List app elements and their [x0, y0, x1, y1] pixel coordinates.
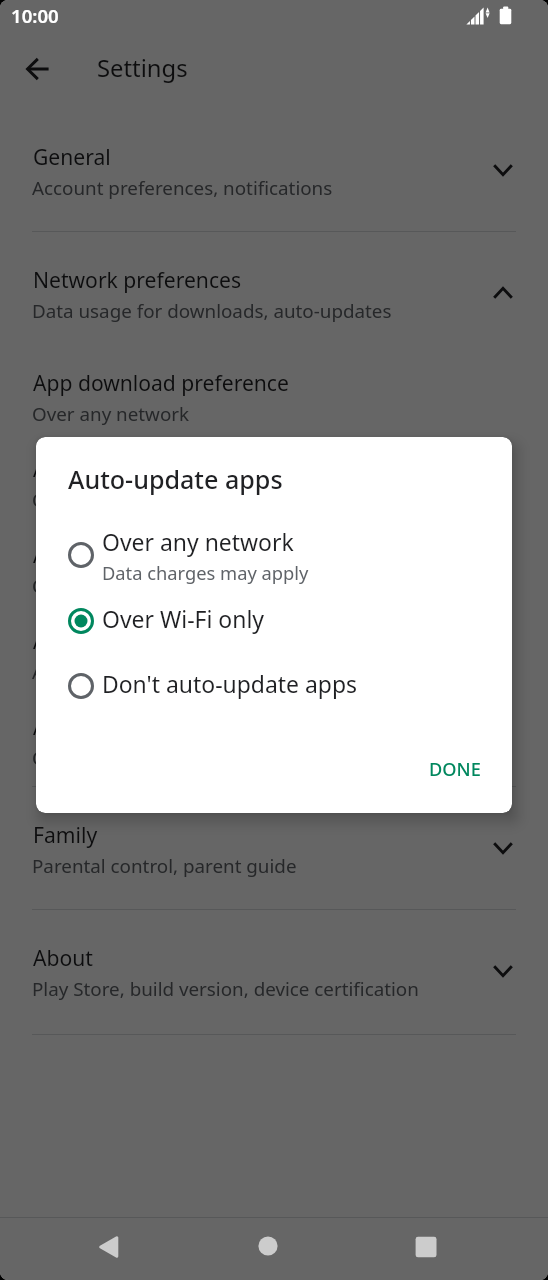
staticText: App download preference: [33, 368, 289, 397]
button[interactable]: Family: [0, 786, 548, 910]
staticText: Auto-update Play services: [33, 626, 288, 655]
staticText: Family: [33, 820, 98, 849]
staticText: Account preferences, notifications: [32, 175, 333, 201]
button[interactable]: App download preference: [0, 355, 548, 441]
staticText: Over any network: [102, 526, 294, 557]
staticText: Always on: [32, 659, 121, 685]
staticText: Don't auto-update apps: [102, 668, 358, 699]
button[interactable]: Auto-play videos: [0, 527, 548, 613]
staticText: Auto-update apps: [68, 462, 283, 496]
button[interactable]: DONE: [417, 753, 493, 801]
button[interactable]: Home: [244, 1222, 292, 1270]
staticText: 10:00: [11, 3, 59, 28]
staticText: Data charges may apply: [102, 560, 309, 585]
button[interactable]: Don't auto-update apps: [36, 657, 512, 714]
staticText: Data usage for downloads, auto-updates: [32, 298, 392, 324]
staticText: Over Wi-Fi only: [32, 487, 165, 513]
staticText: Auto-download rewards: [33, 712, 270, 741]
button[interactable]: Auto-update Play services: [0, 613, 548, 699]
staticText: Over Wi-Fi only: [32, 573, 165, 599]
staticText: Parental control, parent guide: [32, 853, 297, 879]
staticText: DONE: [429, 757, 481, 782]
staticText: Settings: [97, 52, 188, 84]
staticText: Over Wi-Fi only: [32, 745, 165, 771]
button[interactable]: Back: [85, 1223, 133, 1271]
staticText: Play Store, build version, device certif…: [32, 976, 419, 1002]
staticText: Over Wi-Fi only: [102, 603, 265, 634]
button[interactable]: Recent apps: [402, 1223, 450, 1271]
staticText: Auto-play videos: [33, 540, 198, 569]
button[interactable]: Over Wi-Fi only: [36, 592, 512, 649]
button[interactable]: About: [0, 909, 548, 1033]
button[interactable]: Network preferences: [0, 231, 548, 355]
button[interactable]: Auto-download rewards: [0, 699, 548, 785]
staticText: General: [33, 142, 111, 171]
staticText: About: [33, 943, 93, 972]
button[interactable]: Navigate up: [22, 53, 54, 85]
staticText: Network preferences: [33, 265, 242, 294]
staticText: Auto-update apps: [33, 454, 211, 483]
button[interactable]: General: [0, 108, 548, 232]
staticText: Over any network: [32, 401, 190, 427]
button[interactable]: Over any network: [36, 523, 512, 589]
button[interactable]: Auto-update apps: [0, 441, 548, 527]
